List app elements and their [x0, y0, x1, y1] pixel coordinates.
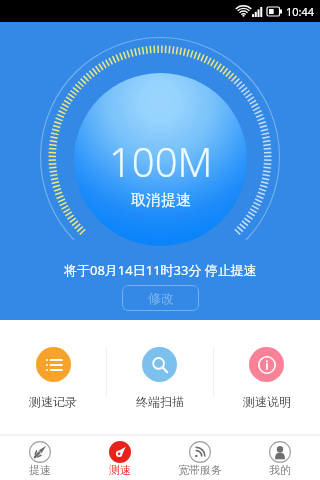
- staticText: 测速记录: [29, 394, 77, 409]
- button[interactable]: 修改: [122, 285, 199, 311]
- staticText: 提速: [29, 463, 51, 477]
- staticText: 宽带服务: [178, 463, 222, 477]
- button[interactable]: 测速说明: [213, 320, 320, 434]
- button[interactable]: 我的: [240, 436, 320, 480]
- button[interactable]: 终端扫描: [106, 320, 213, 434]
- button[interactable]: 宽带服务: [160, 436, 240, 480]
- staticText: 测速: [109, 463, 131, 477]
- button[interactable]: 测速: [80, 436, 160, 480]
- staticText: 我的: [269, 463, 291, 477]
- staticText: 100M: [109, 134, 213, 188]
- button[interactable]: 100M: [74, 73, 247, 246]
- staticText: 测速说明: [243, 394, 291, 409]
- staticText: 将于08月14日11时33分 停止提速: [64, 261, 257, 279]
- staticText: 修改: [148, 290, 174, 306]
- staticText: 10:44: [286, 4, 315, 19]
- button[interactable]: 测速记录: [0, 320, 106, 434]
- staticText: 终端扫描: [136, 394, 184, 409]
- staticText: 取消提速: [131, 191, 191, 210]
- button[interactable]: 提速: [0, 436, 80, 480]
